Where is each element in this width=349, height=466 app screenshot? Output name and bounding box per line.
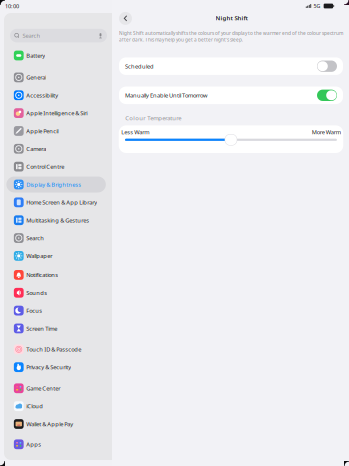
staticText: Less Warm — [121, 128, 149, 136]
staticText: Accessibility — [26, 91, 58, 99]
button[interactable]: Wallpaper — [6, 248, 106, 264]
staticText: iCloud — [26, 402, 43, 410]
staticText: Colour Temperature — [125, 114, 181, 122]
button[interactable]: Sounds — [6, 285, 106, 301]
staticText: Screen Time — [26, 324, 57, 332]
button[interactable]: Display & Brightness — [6, 176, 106, 192]
staticText: Apple Pencil — [26, 127, 58, 135]
button[interactable]: Manually Enable Until Tomorrow — [119, 86, 343, 104]
button[interactable]: Camera — [6, 141, 106, 157]
staticText: Game Center — [26, 384, 60, 392]
staticText: Control Centre — [26, 163, 64, 170]
button[interactable]: Apps — [6, 436, 106, 452]
staticText: 10:00 — [5, 2, 19, 10]
staticText: Display & Brightness — [26, 181, 81, 188]
staticText: Manually Enable Until Tomorrow — [125, 91, 208, 99]
staticText: Camera — [26, 145, 46, 153]
staticText: Search — [26, 234, 44, 242]
staticText: Privacy & Security — [26, 363, 71, 371]
button[interactable]: Accessibility — [6, 87, 106, 103]
staticText: Sounds — [26, 289, 47, 297]
button[interactable]: Control Centre — [6, 159, 106, 175]
button[interactable]: Touch ID & Passcode — [6, 341, 106, 357]
staticText: Home Screen & App Library — [26, 198, 97, 206]
button[interactable]: Notifications — [6, 267, 106, 283]
button[interactable]: Privacy & Security — [6, 359, 106, 375]
button[interactable]: Wallet & Apple Pay — [6, 416, 106, 432]
staticText: Night Shift — [215, 14, 247, 22]
staticText: Touch ID & Passcode — [26, 345, 81, 353]
button[interactable]: iCloud — [6, 398, 106, 414]
button[interactable]: Apple Intelligence & Siri — [6, 105, 106, 121]
staticText: Apps — [26, 440, 41, 448]
button[interactable]: Focus — [6, 303, 106, 319]
button[interactable]: General — [6, 69, 106, 85]
button[interactable]: Multitasking & Gestures — [6, 212, 106, 228]
staticText: More Warm — [312, 128, 341, 136]
button[interactable]: Battery — [6, 47, 106, 63]
staticText: 5G — [313, 2, 320, 10]
staticText: Battery — [26, 52, 45, 59]
button[interactable]: Scheduled — [119, 57, 343, 75]
button[interactable]: Game Center — [6, 380, 106, 396]
button[interactable]: Screen Time — [6, 320, 106, 336]
staticText: Wallet & Apple Pay — [26, 420, 73, 428]
staticText: Multitasking & Gestures — [26, 216, 89, 224]
button[interactable]: Back — [115, 8, 135, 28]
staticText: Apple Intelligence & Siri — [26, 109, 87, 117]
staticText: General — [26, 73, 46, 81]
staticText: Wallpaper — [26, 252, 52, 260]
staticText: Focus — [26, 307, 42, 314]
button[interactable]: Search — [6, 230, 106, 246]
staticText: Notifications — [26, 271, 58, 279]
button[interactable]: Apple Pencil — [6, 123, 106, 139]
staticText: Scheduled — [125, 62, 154, 70]
staticText: Search — [22, 32, 40, 39]
staticText: Night Shift automatically shifts the col… — [119, 30, 343, 43]
button[interactable]: Home Screen & App Library — [6, 194, 106, 210]
